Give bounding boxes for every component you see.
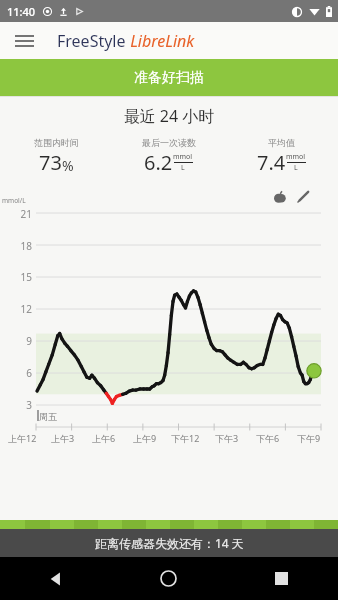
- staticText: 12: [12, 302, 32, 316]
- staticText: 上午6: [92, 432, 116, 444]
- staticText: 下午3: [215, 432, 239, 444]
- button[interactable]: Home: [112, 557, 225, 600]
- staticText: 6: [12, 366, 32, 380]
- staticText: 上午3: [51, 432, 75, 444]
- staticText: 下午9: [297, 432, 321, 444]
- staticText: 3: [12, 398, 32, 412]
- button[interactable]: 准备好扫描: [0, 59, 338, 96]
- button[interactable]: 距离传感器失效还有：14 天: [0, 529, 338, 557]
- button[interactable]: Recent apps: [225, 557, 338, 600]
- staticText: 上午12: [8, 432, 37, 444]
- staticText: %: [62, 156, 74, 175]
- staticText: mmol/L: [2, 196, 26, 205]
- staticText: mmol: [173, 152, 193, 162]
- staticText: 距离传感器失效还有：14 天: [95, 535, 244, 551]
- staticText: mmol: [286, 152, 306, 162]
- button[interactable]: Insulin log: [295, 188, 312, 205]
- staticText: 11:40: [7, 4, 36, 19]
- staticText: 周五: [39, 411, 57, 422]
- staticText: 下午12: [171, 432, 200, 444]
- button[interactable]: Food log: [271, 188, 288, 205]
- staticText: 6.2: [144, 149, 173, 176]
- staticText: 9: [12, 334, 32, 348]
- staticText: 上午9: [133, 432, 157, 444]
- button[interactable]: 最后一次读数: [112, 137, 225, 176]
- staticText: 范围内时间: [34, 137, 79, 148]
- staticText: 73: [39, 149, 62, 176]
- staticText: 最近 24 小时: [0, 105, 338, 127]
- staticText: 准备好扫描: [134, 69, 204, 87]
- staticText: 下午6: [256, 432, 280, 444]
- button[interactable]: 范围内时间: [0, 137, 112, 176]
- button[interactable]: Menu: [6, 23, 42, 59]
- staticText: 平均值: [268, 137, 295, 148]
- button[interactable]: Back: [0, 557, 112, 600]
- staticText: 最后一次读数: [142, 137, 196, 148]
- staticText: LibreLink: [126, 30, 195, 52]
- staticText: L: [294, 163, 298, 173]
- staticText: FreeStyle: [57, 30, 126, 52]
- staticText: L: [181, 163, 185, 173]
- staticText: 18: [12, 239, 32, 253]
- staticText: 7.4: [257, 149, 286, 176]
- button[interactable]: 平均值: [225, 137, 338, 176]
- staticText: 21: [12, 207, 32, 221]
- staticText: 15: [12, 270, 32, 284]
